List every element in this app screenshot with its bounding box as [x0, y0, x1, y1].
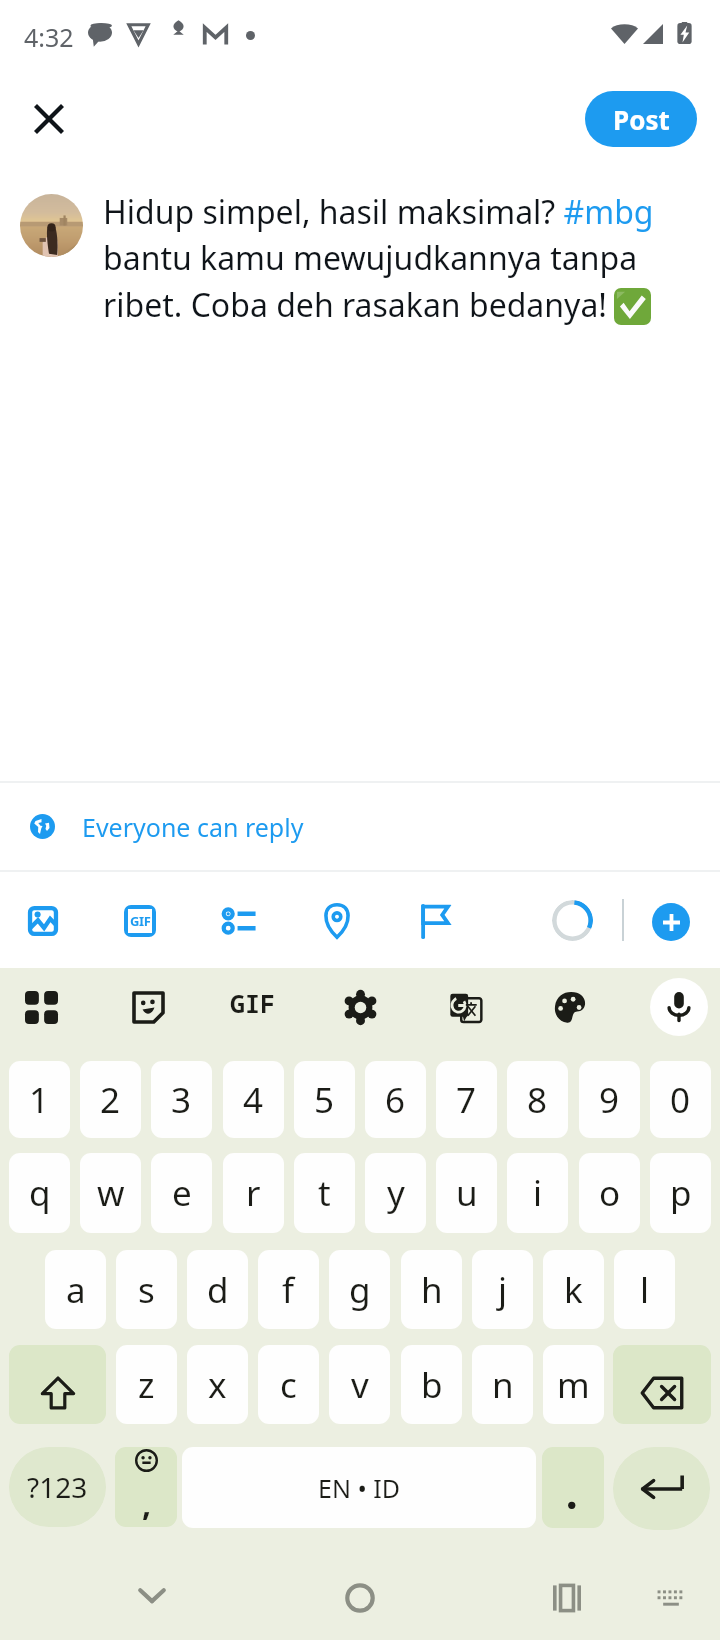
button[interactable]: w [80, 1153, 141, 1233]
staticText: l [640, 1266, 650, 1314]
button[interactable]: k [543, 1250, 604, 1329]
staticText: y [387, 1169, 405, 1217]
button[interactable]: Voice input [650, 978, 708, 1036]
button[interactable]: Home [332, 1570, 388, 1626]
button[interactable]: f [258, 1250, 319, 1329]
button[interactable]: Recent apps [539, 1570, 595, 1626]
button[interactable]: o [579, 1153, 640, 1233]
staticText: ?123 [27, 1468, 88, 1506]
button[interactable]: u [436, 1153, 497, 1233]
staticText: i [533, 1169, 543, 1217]
button[interactable]: 0 [650, 1061, 711, 1138]
staticText: 6 [385, 1076, 406, 1124]
button[interactable]: q [9, 1153, 70, 1233]
staticText: Post [613, 102, 670, 137]
staticText: n [492, 1361, 514, 1409]
button[interactable]: Add another post [652, 903, 690, 941]
button[interactable]: h [401, 1250, 462, 1329]
button[interactable]: l [614, 1250, 675, 1329]
staticText: z [138, 1361, 155, 1409]
button[interactable]: Character count [552, 900, 593, 941]
staticText: x [208, 1361, 227, 1409]
button[interactable]: Translate [439, 981, 491, 1033]
button[interactable]: Enter [613, 1447, 710, 1530]
button[interactable]: 3 [151, 1061, 212, 1138]
staticText: 2 [100, 1076, 121, 1124]
button[interactable]: Media [20, 898, 66, 944]
button[interactable]: Theme [544, 981, 596, 1033]
button[interactable]: Community note [412, 898, 458, 944]
button[interactable]: m [543, 1345, 604, 1424]
button[interactable] [542, 1447, 604, 1528]
button[interactable]: p [650, 1153, 711, 1233]
staticText: q [29, 1169, 51, 1217]
button[interactable]: Back [124, 1567, 180, 1623]
staticText: 4 [243, 1076, 264, 1124]
staticText: t [318, 1169, 331, 1217]
button[interactable]: a [45, 1250, 106, 1329]
button[interactable]: Change keyboard [645, 1570, 697, 1622]
button[interactable]: v [329, 1345, 390, 1424]
staticText: EN • ID [318, 1471, 401, 1505]
staticText: f [282, 1266, 295, 1314]
button[interactable]: z [116, 1345, 177, 1424]
button[interactable]: n [472, 1345, 533, 1424]
staticText: c [280, 1361, 297, 1409]
button[interactable]: Settings [334, 981, 386, 1033]
staticText: j [498, 1266, 508, 1314]
button[interactable]: j [472, 1250, 533, 1329]
button[interactable]: x [187, 1345, 248, 1424]
button[interactable]: Everyone can reply [0, 783, 720, 870]
button[interactable]: 8 [507, 1061, 568, 1138]
button[interactable]: c [258, 1345, 319, 1424]
button[interactable]: Apps [15, 981, 67, 1033]
button[interactable]: s [116, 1250, 177, 1329]
button[interactable]: 4 [223, 1061, 284, 1138]
button[interactable]: 1 [9, 1061, 70, 1138]
button[interactable]: GIF [117, 898, 163, 944]
staticText: 5 [314, 1076, 335, 1124]
button[interactable]: e [151, 1153, 212, 1233]
button[interactable]: Location [314, 898, 360, 944]
staticText: 8 [527, 1076, 548, 1124]
button[interactable]: 2 [80, 1061, 141, 1138]
button[interactable]: EN • ID [182, 1447, 536, 1528]
button[interactable]: Emoji and comma [115, 1447, 177, 1527]
button[interactable]: GIF keyboard [227, 977, 279, 1029]
staticText: s [138, 1266, 155, 1314]
button[interactable]: Post [585, 91, 697, 147]
staticText: 3 [171, 1076, 192, 1124]
staticText: a [66, 1266, 86, 1314]
staticText: Everyone can reply [82, 810, 304, 844]
staticText: g [349, 1266, 371, 1314]
button[interactable]: g [329, 1250, 390, 1329]
staticText: h [421, 1266, 443, 1314]
button[interactable]: t [294, 1153, 355, 1233]
staticText: 7 [456, 1076, 477, 1124]
staticText: 4:32 [24, 20, 74, 54]
button[interactable]: Close [13, 83, 85, 155]
staticText: u [456, 1169, 478, 1217]
button[interactable]: 9 [579, 1061, 640, 1138]
staticText: k [564, 1266, 583, 1314]
button[interactable]: Stickers [122, 981, 174, 1033]
staticText: d [207, 1266, 229, 1314]
button[interactable]: i [507, 1153, 568, 1233]
button[interactable]: d [187, 1250, 248, 1329]
button[interactable]: y [365, 1153, 426, 1233]
button[interactable]: Shift [9, 1345, 106, 1424]
button[interactable]: Poll [216, 898, 262, 944]
staticText: 0 [670, 1076, 691, 1124]
staticText: e [172, 1169, 192, 1217]
staticText: 9 [599, 1076, 620, 1124]
button[interactable]: 6 [365, 1061, 426, 1138]
button[interactable]: r [223, 1153, 284, 1233]
button[interactable]: ?123 [9, 1447, 106, 1527]
staticText: v [351, 1361, 369, 1409]
staticText: Hidup simpel, hasil maksimal? #mbg bantu… [103, 190, 673, 327]
button[interactable]: Backspace [613, 1345, 711, 1424]
button[interactable]: 7 [436, 1061, 497, 1138]
staticText: , [142, 1482, 152, 1526]
button[interactable]: 5 [294, 1061, 355, 1138]
button[interactable]: b [401, 1345, 462, 1424]
